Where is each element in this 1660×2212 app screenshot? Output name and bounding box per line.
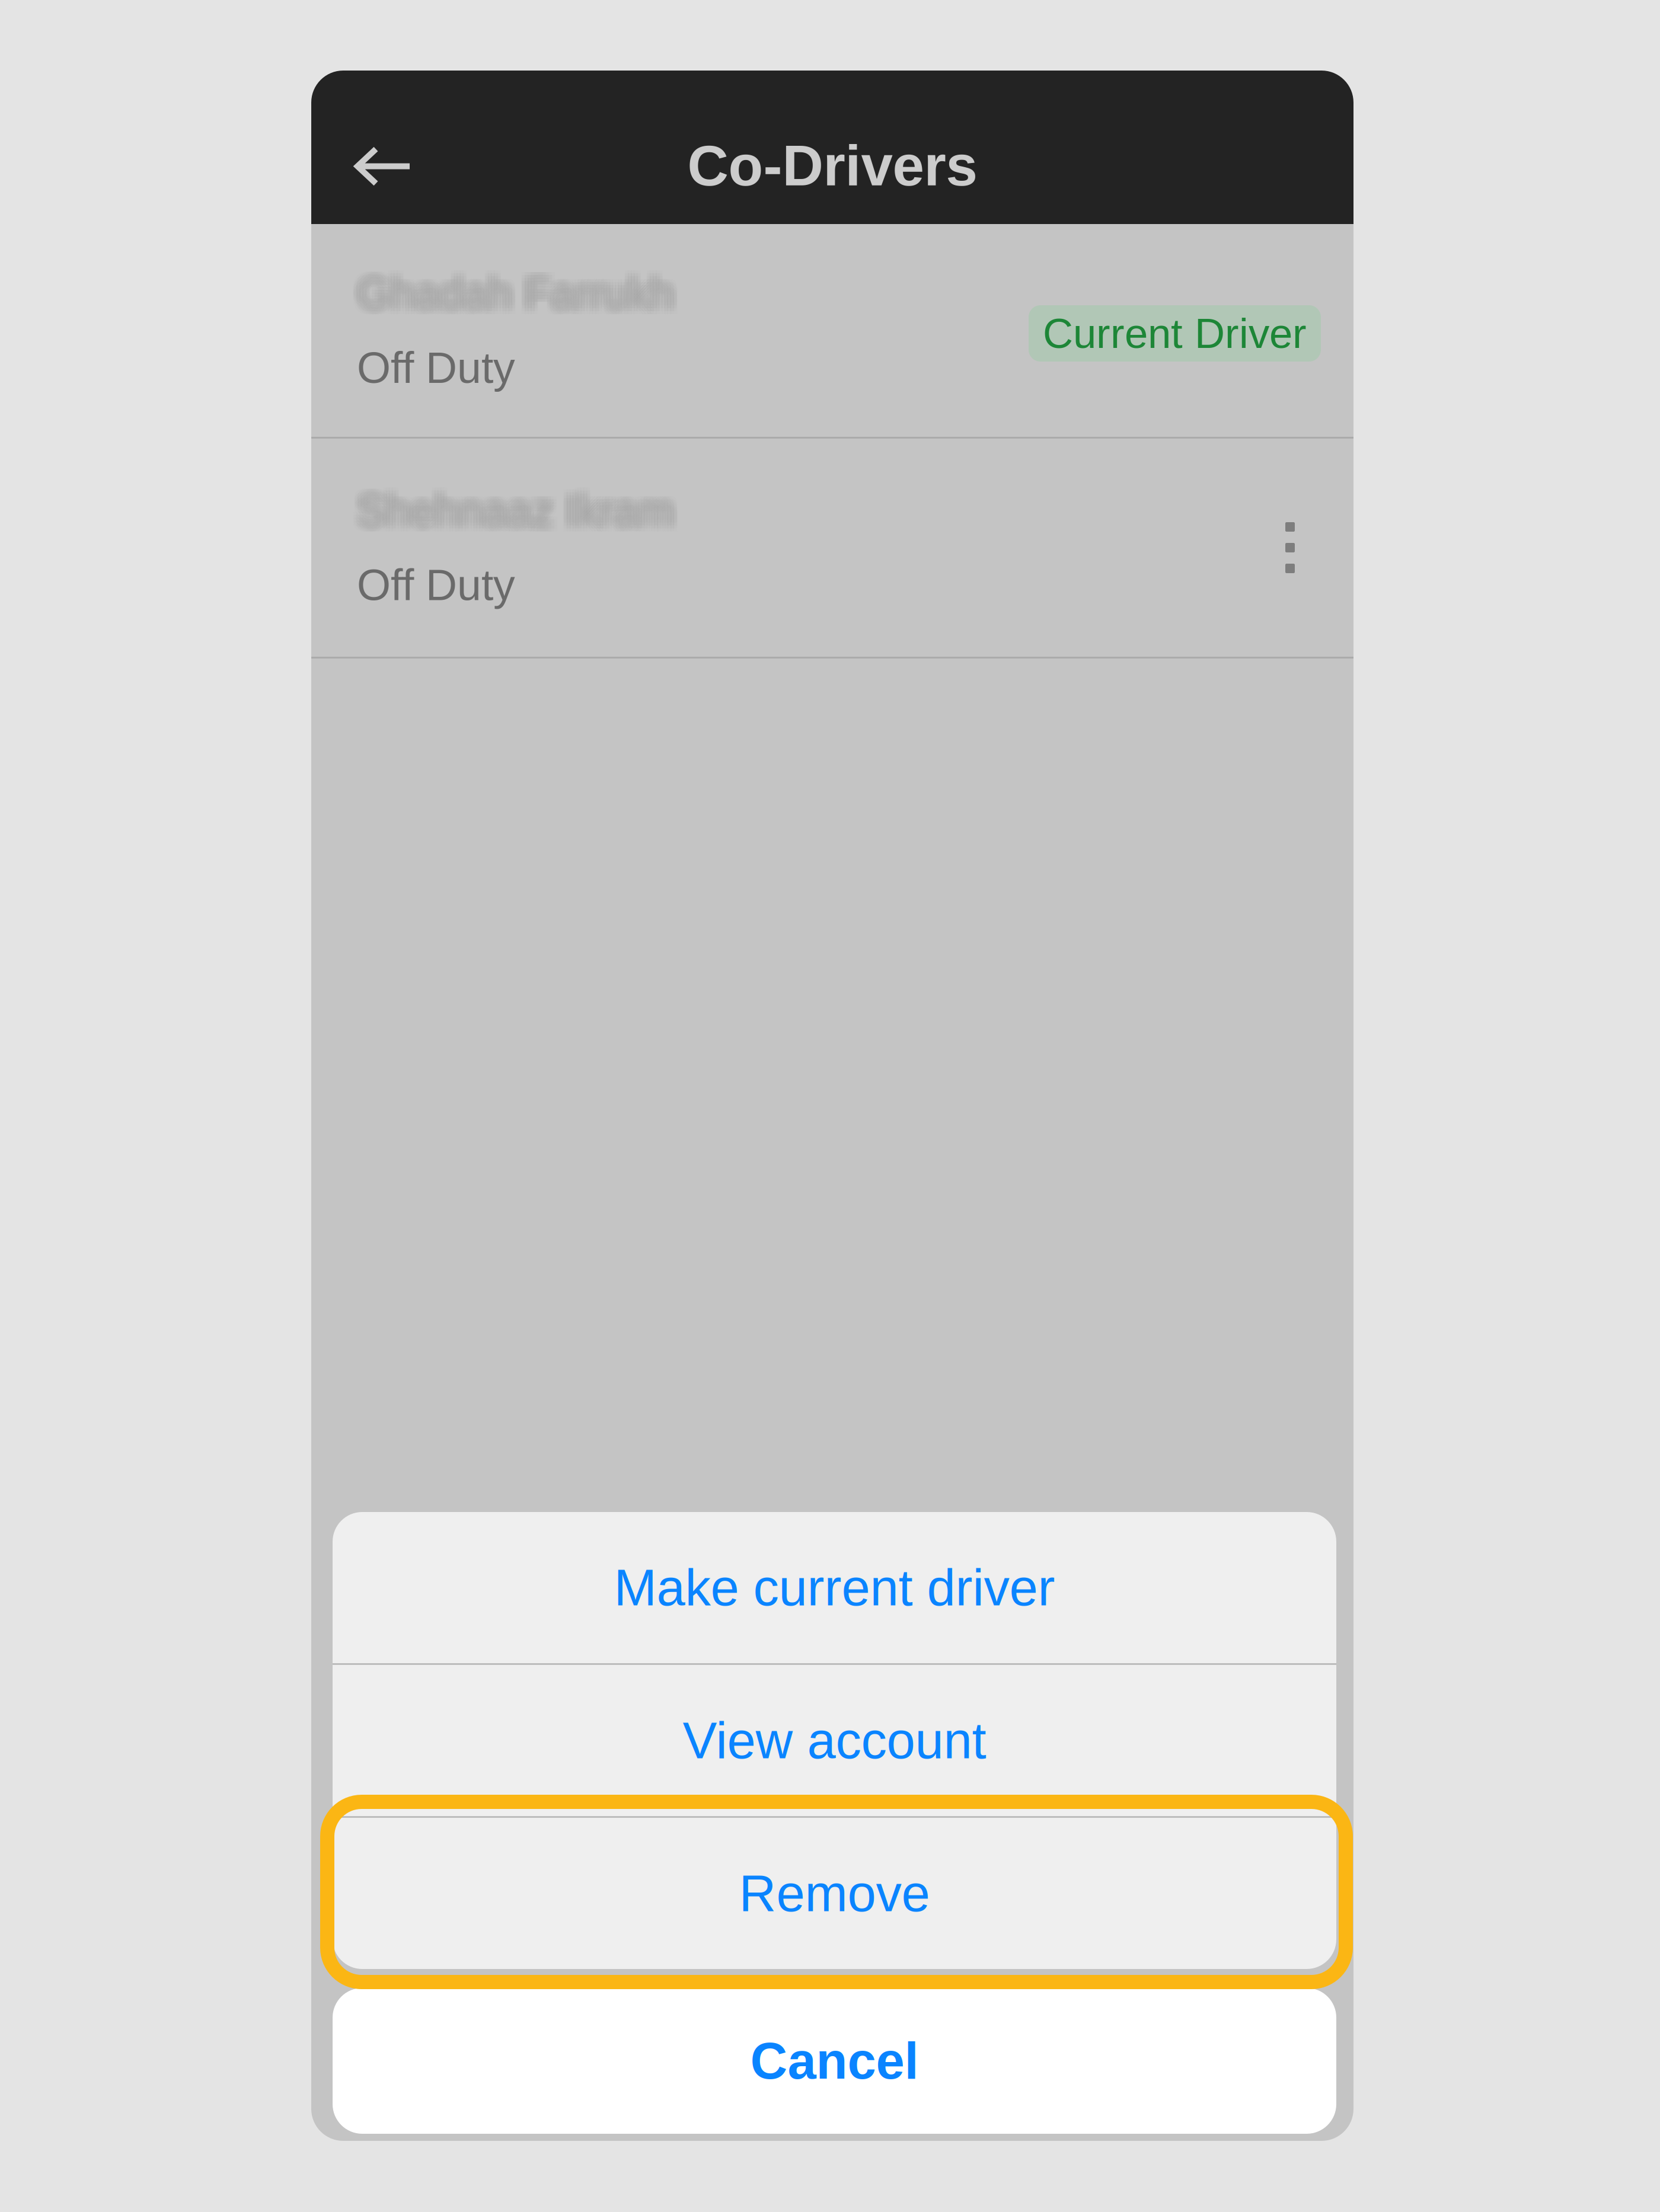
staticText: Shehnaaz Ikram (354, 492, 671, 541)
button[interactable]: Ghadah Farrukh (311, 269, 674, 392)
staticText: Shehnaaz Ikram (360, 483, 677, 532)
staticText: Shehnaaz Ikram (357, 480, 674, 529)
staticText: Ghadah Farrukh (351, 263, 668, 311)
staticText: Ghadah Farrukh (357, 266, 674, 314)
staticText: Ghadah Farrukh (351, 275, 668, 323)
staticText: Shehnaaz Ikram (360, 489, 677, 538)
staticText: Ghadah Farrukh (354, 269, 671, 317)
staticText: Ghadah Farrukh (363, 269, 680, 317)
staticText: Shehnaaz Ikram (360, 486, 677, 535)
staticText: Ghadah Farrukh (357, 269, 674, 317)
staticText: Ghadah Farrukh (360, 275, 677, 323)
staticText: Shehnaaz Ikram (363, 492, 680, 541)
staticText: Shehnaaz Ikram (357, 486, 674, 535)
staticText: Ghadah Farrukh (363, 266, 680, 314)
staticText: Ghadah Farrukh (360, 272, 677, 320)
staticText: Shehnaaz Ikram (354, 486, 671, 535)
staticText: Shehnaaz Ikram (360, 480, 677, 529)
staticText: Shehnaaz Ikram (351, 480, 668, 529)
staticText: Shehnaaz Ikram (363, 486, 680, 535)
staticText: Ghadah Farrukh (357, 275, 674, 323)
staticText: Current Driver (1043, 310, 1307, 357)
button[interactable]: Remove (333, 1818, 1336, 1969)
staticText: Shehnaaz Ikram (357, 492, 674, 541)
staticText: Shehnaaz Ikram (363, 489, 680, 538)
staticText: Ghadah Farrukh (363, 275, 680, 323)
staticText: Off Duty (357, 561, 515, 609)
staticText: Co-Drivers (687, 134, 977, 197)
staticText: Ghadah Farrukh (354, 263, 671, 311)
staticText: Ghadah Farrukh (360, 266, 677, 314)
staticText: Shehnaaz Ikram (363, 483, 680, 532)
staticText: Make current driver (614, 1559, 1055, 1616)
staticText: Shehnaaz Ikram (357, 483, 674, 532)
button[interactable]: More options (1263, 512, 1353, 583)
staticText: Ghadah Farrukh (351, 269, 668, 317)
staticText: Shehnaaz Ikram (351, 486, 668, 535)
staticText: Ghadah Farrukh (351, 272, 668, 320)
staticText: Ghadah Farrukh (357, 272, 674, 320)
staticText: Ghadah Farrukh (354, 275, 671, 323)
button[interactable]: Shehnaaz Ikram (311, 486, 674, 609)
staticText: Ghadah Farrukh (354, 272, 671, 320)
button[interactable]: Make current driver (333, 1512, 1336, 1663)
staticText: Shehnaaz Ikram (351, 489, 668, 538)
staticText: Remove (739, 1865, 930, 1922)
staticText: Shehnaaz Ikram (357, 489, 674, 538)
staticText: View account (683, 1712, 986, 1769)
staticText: Shehnaaz Ikram (354, 483, 671, 532)
staticText: Ghadah Farrukh (363, 272, 680, 320)
staticText: Ghadah Farrukh (351, 266, 668, 314)
staticText: Shehnaaz Ikram (354, 480, 671, 529)
staticText: Shehnaaz Ikram (351, 483, 668, 532)
button[interactable]: Cancel (333, 1988, 1336, 2134)
button[interactable]: View account (333, 1665, 1336, 1816)
staticText: Shehnaaz Ikram (354, 489, 671, 538)
staticText: Shehnaaz Ikram (351, 492, 668, 541)
staticText: Ghadah Farrukh (360, 263, 677, 311)
staticText: Ghadah Farrukh (363, 263, 680, 311)
staticText: Ghadah Farrukh (357, 263, 674, 311)
staticText: Ghadah Farrukh (360, 269, 677, 317)
button[interactable]: Back (311, 71, 413, 224)
staticText: Cancel (750, 2032, 919, 2090)
staticText: Shehnaaz Ikram (363, 480, 680, 529)
staticText: Off Duty (357, 343, 515, 392)
staticText: Ghadah Farrukh (354, 266, 671, 314)
staticText: Shehnaaz Ikram (360, 492, 677, 541)
